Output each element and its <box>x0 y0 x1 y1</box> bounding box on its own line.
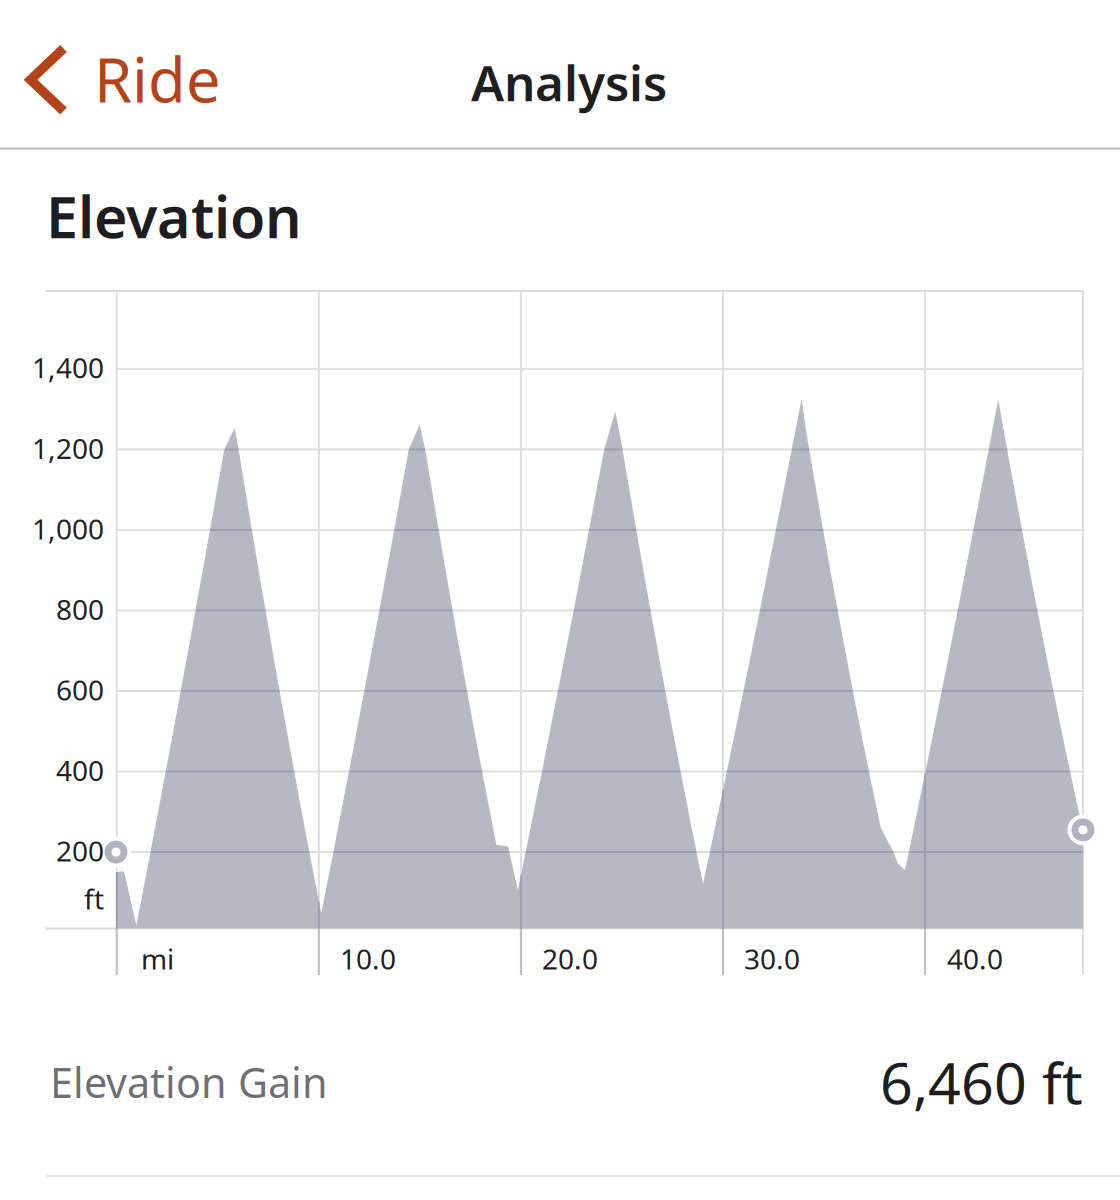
staticText: Ride <box>94 38 221 119</box>
staticText: Elevation <box>46 178 302 254</box>
staticText: 10.0 <box>340 940 396 977</box>
staticText: 600 <box>56 671 104 708</box>
staticText: Analysis <box>471 49 667 115</box>
staticText: 400 <box>56 751 104 789</box>
staticText: mi <box>141 940 174 977</box>
staticText: 800 <box>56 590 104 628</box>
button[interactable]: Ride <box>0 0 250 148</box>
staticText: 40.0 <box>947 940 1003 977</box>
staticText: 1,400 <box>32 349 104 386</box>
staticText: 6,460 ft <box>880 1044 1083 1120</box>
staticText: 20.0 <box>542 940 598 977</box>
staticText: 1,000 <box>32 510 104 547</box>
staticText: 200 <box>56 832 104 869</box>
staticText: 30.0 <box>744 940 800 977</box>
staticText: ft <box>84 880 104 917</box>
staticText: Elevation Gain <box>50 1055 328 1109</box>
staticText: 1,200 <box>32 429 104 467</box>
